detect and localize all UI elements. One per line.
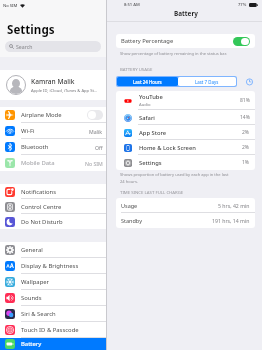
button[interactable]: Siri & Search [0,306,106,322]
staticText: Sounds [21,294,42,302]
staticText: Control Centre [21,203,62,211]
button[interactable]: Wi-Fi [0,123,106,139]
staticText: Touch ID & Passcode [21,326,79,334]
staticText: Settings [139,159,162,167]
button[interactable]: Do Not Disturb [0,214,106,229]
staticText: 1% [242,159,250,166]
staticText: 14% [240,114,250,121]
staticText: Battery [21,340,42,348]
staticText: 8:51 AM [124,2,140,8]
button[interactable]: Safari [116,110,255,125]
button[interactable]: Usage [116,198,255,213]
button[interactable]: Battery [0,338,106,350]
button[interactable]: Control Centre [0,199,106,214]
button[interactable]: Notifications [0,184,106,199]
staticText: TIME SINCE LAST FULL CHARGE [120,189,184,195]
staticText: YouTube [139,93,163,101]
staticText: Airplane Mode [21,111,62,119]
staticText: BATTERY USAGE [120,66,153,72]
staticText: Malik [89,128,103,135]
staticText: Shows proportion of battery used by each… [120,172,234,184]
button[interactable]: Search [5,41,101,52]
staticText: Kamran Malik [31,77,75,86]
button[interactable] [233,37,250,46]
staticText: Apple ID, iCloud, iTunes & App St... [31,88,98,94]
staticText: 2% [242,144,250,151]
button[interactable]: General [0,242,106,258]
button[interactable]: Kamran Malik [0,70,106,100]
button[interactable]: Last 7 Days [178,77,236,86]
button[interactable]: Mobile Data [0,155,106,171]
button[interactable]: Home & Lock Screen [116,140,255,155]
staticText: Safari [139,114,155,122]
staticText: Mobile Data [21,159,55,167]
button[interactable]: Display & Brightness [0,258,106,274]
button[interactable] [87,110,103,120]
button[interactable]: Battery history [245,77,254,86]
staticText: Home & Lock Screen [139,144,196,152]
staticText: Wi-Fi [21,127,35,135]
staticText: Audio [139,102,151,108]
staticText: Wallpaper [21,278,50,286]
staticText: General [21,246,43,254]
button[interactable]: Standby [116,213,255,228]
staticText: 5 hrs, 42 min [218,202,250,209]
staticText: Settings [7,22,55,38]
button[interactable]: Bluetooth [0,139,106,155]
staticText: 191 hrs, 14 min [212,217,250,224]
button[interactable]: Last 24 Hours [117,77,178,86]
staticText: Off [95,144,103,151]
staticText: 2% [242,129,250,136]
button[interactable]: Sounds [0,290,106,306]
staticText: Last 7 Days [195,79,219,85]
staticText: Battery [174,9,198,18]
staticText: Display & Brightness [21,262,79,270]
staticText: Last 24 Hours [133,79,162,85]
button[interactable]: Touch ID & Passcode [0,322,106,338]
staticText: Bluetooth [21,143,49,151]
staticText: Notifications [21,188,57,196]
staticText: Show percentage of battery remaining in … [120,51,227,57]
staticText: No SIM [85,160,103,167]
staticText: Battery Percentage [121,37,174,45]
button[interactable]: Wallpaper [0,274,106,290]
staticText: Standby [121,217,142,224]
button[interactable]: App Store [116,125,255,140]
staticText: Do Not Disturb [21,218,63,226]
button[interactable]: Airplane Mode [0,107,106,123]
staticText: 81% [240,97,250,104]
staticText: Search [16,43,33,50]
staticText: Siri & Search [21,310,56,318]
staticText: Usage [121,202,138,209]
staticText: 77% [238,2,247,8]
staticText: App Store [139,129,167,137]
button[interactable]: YouTube [116,91,255,110]
button[interactable]: Battery Percentage [116,34,255,48]
staticText: No SIM [3,3,18,9]
button[interactable]: Settings [116,155,255,170]
